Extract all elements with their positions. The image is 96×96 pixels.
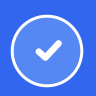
button[interactable]: Done xyxy=(0,0,96,96)
